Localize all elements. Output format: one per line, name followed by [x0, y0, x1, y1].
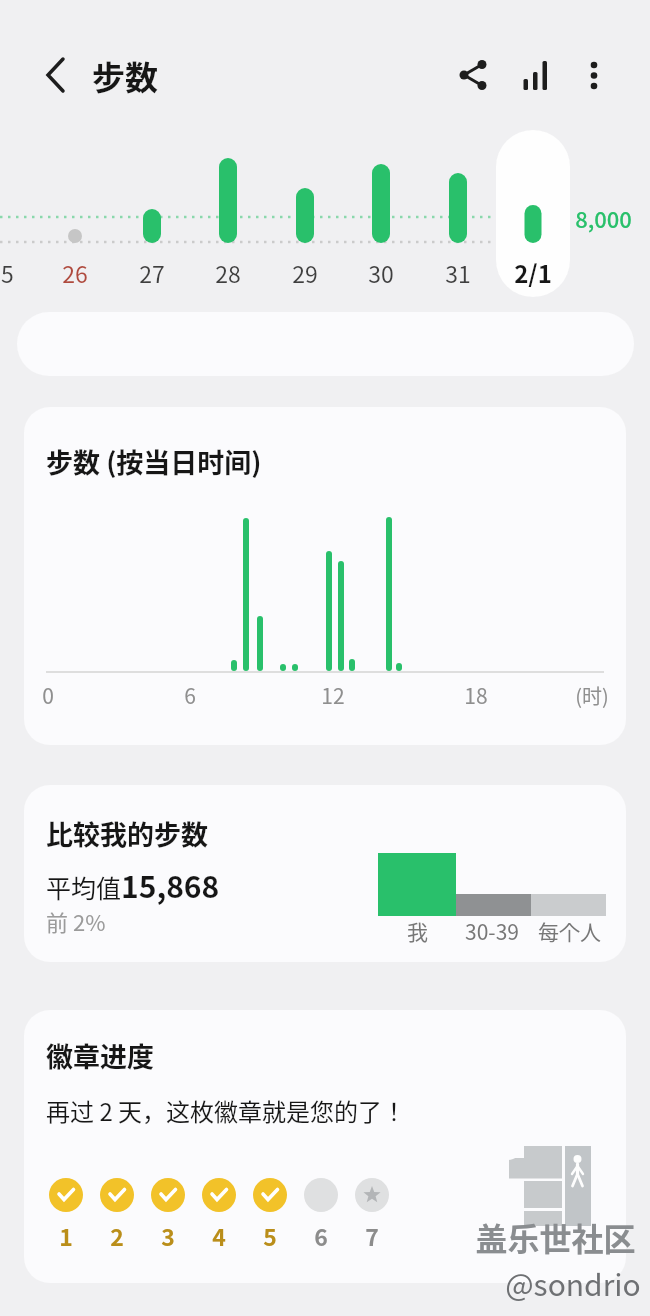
staticText: 30-39 [465, 916, 519, 946]
button[interactable] [572, 53, 616, 97]
staticText: 盖乐世社区 [475, 1214, 636, 1260]
staticText: 我 [407, 916, 428, 946]
staticText: 7 [365, 1219, 379, 1252]
staticText: 3 [161, 1219, 175, 1252]
staticText: 30 [368, 256, 394, 289]
staticText: 28 [215, 256, 241, 289]
staticText: (时) [575, 681, 609, 710]
staticText: 5 [263, 1219, 277, 1252]
button[interactable] [24, 407, 626, 745]
staticText: 31 [445, 256, 471, 289]
staticText: 步数 (按当日时间) [46, 442, 262, 481]
staticText: @sondrio [505, 1261, 641, 1304]
staticText: 6 [314, 1219, 328, 1252]
button[interactable] [24, 785, 626, 962]
staticText: 前 2% [46, 905, 106, 937]
staticText: 12 [321, 680, 345, 710]
staticText: 比较我的步数 [46, 814, 208, 853]
staticText: 5 [1, 256, 14, 289]
staticText: 26 [62, 256, 88, 289]
button[interactable] [496, 130, 570, 297]
staticText: 每个人 [538, 916, 601, 946]
staticText: 29 [292, 256, 318, 289]
staticText: 4 [212, 1219, 226, 1252]
button[interactable] [513, 53, 557, 97]
staticText: 平均值15,868 [46, 863, 220, 906]
button[interactable] [34, 53, 78, 97]
staticText: 18 [464, 680, 488, 710]
button[interactable] [450, 53, 494, 97]
staticText: 1 [59, 1219, 73, 1252]
staticText: 8,000 [575, 202, 632, 234]
staticText: 徽章进度 [46, 1036, 154, 1075]
staticText: 2/1 [514, 255, 552, 290]
button[interactable] [24, 1010, 626, 1283]
staticText: 2 [110, 1219, 124, 1252]
staticText: 再过 2 天，这枚徽章就是您的了！ [46, 1093, 407, 1128]
staticText: 27 [139, 256, 165, 289]
staticText: 0 [42, 680, 54, 710]
staticText: 步数 [92, 52, 158, 100]
staticText: 6 [184, 680, 196, 710]
